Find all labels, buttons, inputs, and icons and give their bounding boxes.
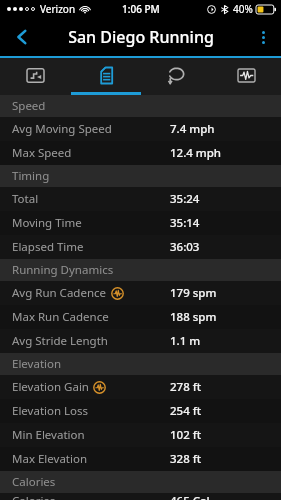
staticText: Max Speed: [12, 145, 72, 161]
button[interactable]: Avg Stride Length: [0, 329, 281, 353]
staticText: 188 spm: [170, 309, 217, 325]
staticText: 40%: [233, 2, 253, 16]
button[interactable]: Avg Moving Speed: [0, 117, 281, 141]
button[interactable]: Min Elevation: [0, 423, 281, 447]
staticText: San Diego Running: [68, 26, 214, 48]
button[interactable]: Laps: [141, 58, 211, 95]
staticText: 254 ft: [170, 403, 202, 419]
staticText: Verizon: [40, 2, 76, 16]
staticText: Elevation Gain: [12, 379, 89, 395]
button[interactable]: Map: [0, 58, 71, 95]
staticText: Running Dynamics: [12, 262, 114, 278]
button[interactable]: Total: [0, 187, 281, 211]
staticText: 102 ft: [170, 427, 202, 443]
staticText: Avg Run Cadence: [12, 285, 107, 301]
button[interactable]: Charts: [211, 58, 281, 95]
button[interactable]: Max Run Cadence: [0, 305, 281, 329]
button[interactable]: Elevation Gain: [0, 375, 281, 399]
button[interactable]: Calories: [0, 493, 281, 500]
staticText: Avg Moving Speed: [12, 121, 112, 137]
staticText: 35:24: [170, 191, 200, 207]
staticText: 12.4 mph: [170, 145, 222, 161]
button[interactable]: Elapsed Time: [0, 235, 281, 259]
staticText: Elevation: [12, 356, 62, 372]
staticText: Calories: [12, 474, 56, 490]
staticText: 465 Cal: [170, 493, 210, 500]
staticText: 1.1 m: [170, 333, 201, 349]
staticText: 36:03: [170, 239, 200, 255]
staticText: 179 spm: [170, 285, 217, 301]
staticText: Max Run Cadence: [12, 309, 109, 325]
staticText: Total: [12, 191, 39, 207]
staticText: Moving Time: [12, 215, 82, 231]
staticText: 328 ft: [170, 451, 202, 467]
button[interactable]: Moving Time: [0, 211, 281, 235]
button[interactable]: Avg Run Cadence: [0, 281, 281, 305]
staticText: Calories: [12, 493, 56, 500]
staticText: Timing: [12, 168, 50, 184]
staticText: Elevation Loss: [12, 403, 89, 419]
button[interactable]: Back: [0, 18, 44, 56]
staticText: Max Elevation: [12, 451, 88, 467]
staticText: 35:14: [170, 215, 200, 231]
staticText: 7.4 mph: [170, 121, 215, 137]
staticText: Min Elevation: [12, 427, 85, 443]
staticText: 1:06 PM: [122, 2, 160, 16]
staticText: Elapsed Time: [12, 239, 84, 255]
staticText: 278 ft: [170, 379, 202, 395]
button[interactable]: Max Speed: [0, 141, 281, 165]
button[interactable]: Max Elevation: [0, 447, 281, 471]
staticText: Avg Stride Length: [12, 333, 108, 349]
button[interactable]: More options: [245, 18, 281, 56]
staticText: Speed: [12, 98, 46, 114]
button[interactable]: Elevation Loss: [0, 399, 281, 423]
button[interactable]: Details: [71, 58, 141, 95]
